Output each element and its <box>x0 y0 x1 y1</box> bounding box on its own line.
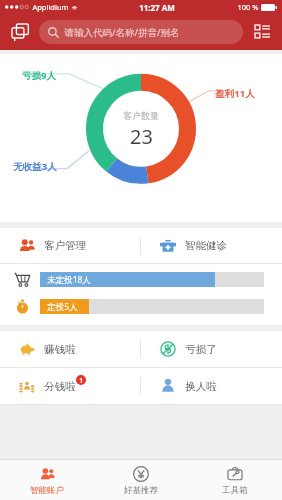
button[interactable]: 定投5人 <box>0 296 282 317</box>
staticText: 换人啦 <box>185 380 217 393</box>
staticText: 赚钱啦 <box>44 343 76 356</box>
staticText: 定投5人 <box>47 301 78 313</box>
staticText: 无收益3人 <box>13 160 57 173</box>
button[interactable]: 工具箱 <box>188 460 282 500</box>
staticText: 客户数量 <box>123 110 159 121</box>
staticText: 智能健诊 <box>185 239 227 252</box>
staticText: 亏损9人 <box>22 69 56 82</box>
staticText: 客户管理 <box>44 239 86 252</box>
staticText: 23 <box>130 123 153 150</box>
button[interactable]: 赚钱啦 <box>0 331 140 367</box>
button[interactable]: 智能健诊 <box>141 228 282 263</box>
staticText: 未定投18人 <box>47 274 91 286</box>
staticText: 11:27 AM <box>139 2 175 13</box>
button[interactable]: 未定投18人 <box>0 269 282 290</box>
staticText: 100 % <box>237 2 259 12</box>
staticText: 请输入代码/名称/拼音/别名 <box>64 26 180 39</box>
staticText: 分钱啦 <box>44 380 76 393</box>
button[interactable]: 请输入代码/名称/拼音/别名 <box>39 20 243 44</box>
button[interactable]: 亏损了 <box>141 331 282 367</box>
staticText: 工具箱 <box>222 485 248 496</box>
staticText: 盈利11人 <box>215 87 255 100</box>
button[interactable]: 换人啦 <box>141 368 282 404</box>
button[interactable]: 分钱啦 <box>0 368 140 404</box>
button[interactable]: 客户管理 <box>0 228 140 263</box>
staticText: 1 <box>79 376 83 385</box>
button[interactable]: Messages <box>8 20 32 44</box>
button[interactable]: 智能账户 <box>0 460 94 500</box>
staticText: 亏损了 <box>185 343 217 356</box>
staticText: 智能账户 <box>30 485 64 496</box>
staticText: Applidium <box>32 2 69 12</box>
button[interactable]: 好基推荐 <box>94 460 188 500</box>
button[interactable]: List view <box>250 20 274 44</box>
staticText: 好基推荐 <box>124 485 158 496</box>
